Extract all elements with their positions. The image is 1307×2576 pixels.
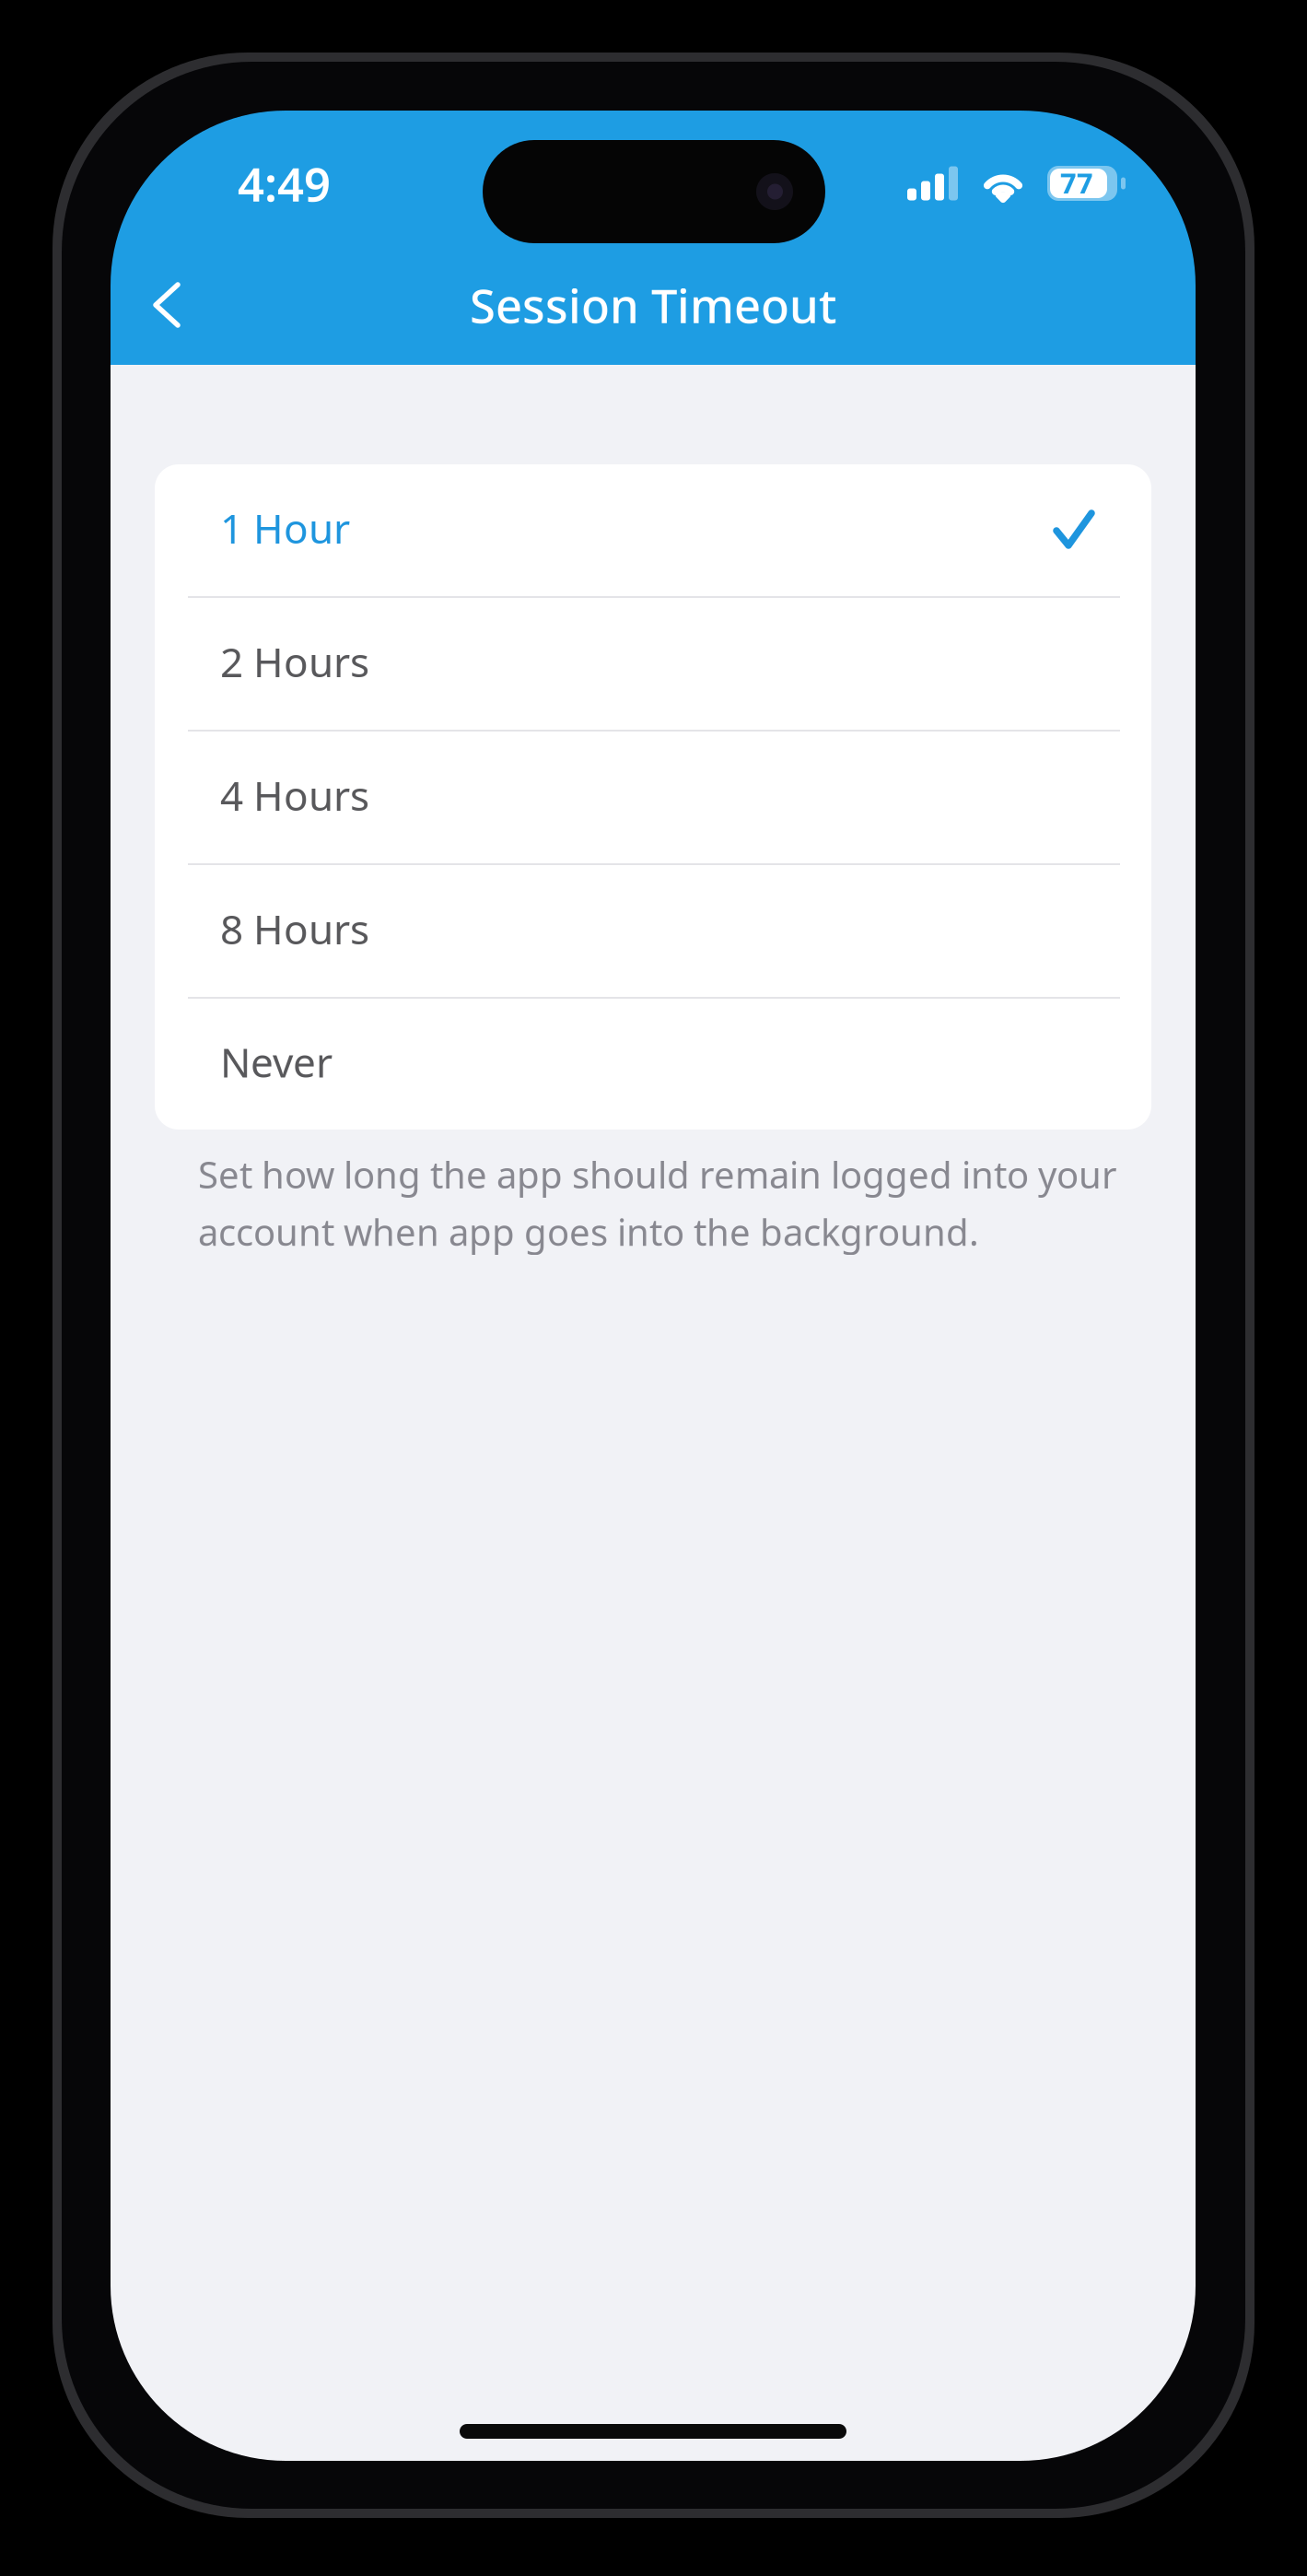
button[interactable]: 1 Hour — [155, 464, 1151, 596]
staticText: Session Timeout — [470, 274, 836, 336]
staticText: 2 Hours — [220, 635, 369, 688]
staticText: 8 Hours — [220, 902, 369, 956]
button[interactable]: 2 Hours — [155, 598, 1151, 730]
button[interactable]: 8 Hours — [155, 865, 1151, 997]
button[interactable]: Never — [155, 999, 1151, 1130]
staticText: 77 — [1060, 164, 1093, 202]
staticText: 4:49 — [238, 152, 331, 214]
staticText: Never — [220, 1035, 333, 1089]
staticText: Set how long the app should remain logge… — [198, 1150, 1117, 1256]
staticText: 1 Hour — [220, 501, 350, 555]
button[interactable]: 4 Hours — [155, 732, 1151, 863]
button[interactable]: Back — [121, 256, 213, 354]
staticText: 4 Hours — [220, 768, 369, 822]
